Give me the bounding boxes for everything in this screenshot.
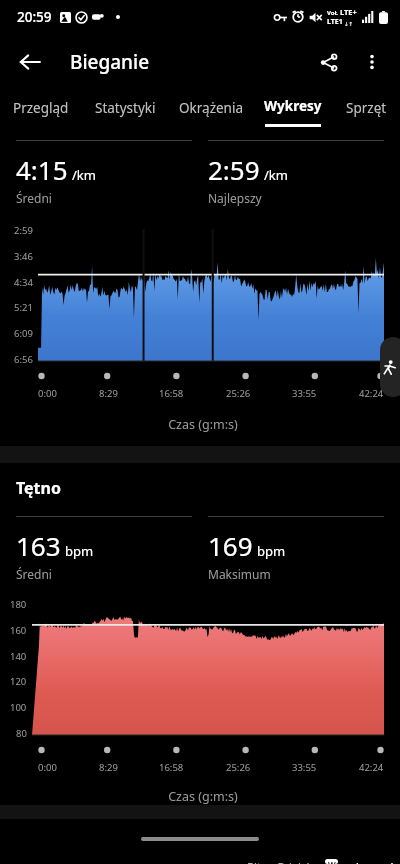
button[interactable]: Więcej opcji (350, 40, 394, 84)
staticText: bpm (257, 542, 286, 560)
staticText: 163 (16, 528, 61, 563)
staticText: 5:21 (14, 301, 33, 314)
staticText: Tętno (16, 477, 61, 499)
staticText: Przegląd (13, 99, 69, 117)
staticText: LTE1 (327, 17, 343, 27)
staticText: VoŁ (327, 9, 338, 17)
staticText: Wykresy (264, 97, 322, 115)
staticText: Czas (g:m:s) (6, 788, 400, 805)
staticText: wykop.pl (339, 859, 394, 864)
staticText: 16:58 (159, 761, 184, 774)
staticText: Średni (16, 190, 52, 206)
staticText: 2:59 (14, 224, 33, 237)
staticText: 33:55 (292, 761, 317, 774)
staticText: 6:56 (14, 353, 33, 366)
staticText: 80 (16, 727, 27, 740)
staticText: /km (264, 166, 288, 184)
staticText: Najlepszy (208, 190, 262, 206)
staticText: 4:15 (16, 152, 68, 187)
staticText: 25:26 (226, 761, 251, 774)
staticText: 3:46 (14, 250, 33, 263)
staticText: 0:00 (38, 387, 57, 400)
staticText: 8:29 (99, 761, 118, 774)
staticText: 33:55 (292, 387, 317, 400)
staticText: Okrążenia (179, 99, 243, 117)
staticText: 4:34 (14, 276, 33, 289)
staticText: 20:59 (17, 8, 52, 26)
staticText: Czas (g:m:s) (6, 416, 400, 433)
staticText: LTE+ (340, 7, 357, 17)
staticText: 42:24 (359, 387, 384, 400)
staticText: Piter_Privisi z (247, 859, 321, 864)
staticText: 25:26 (226, 387, 251, 400)
staticText: Statystyki (95, 99, 156, 117)
staticText: 120 (10, 675, 27, 688)
button[interactable]: Sprzęt (332, 90, 400, 134)
staticText: 2:59 (208, 152, 260, 187)
staticText: 8:29 (99, 387, 118, 400)
staticText: Sprzęt (346, 99, 387, 117)
staticText: Średni (16, 566, 52, 582)
staticText: 0:00 (38, 761, 57, 774)
staticText: Bieganie (70, 49, 150, 75)
staticText: ↓↑ (344, 21, 354, 27)
button[interactable]: Wstecz (8, 40, 52, 84)
button[interactable]: Przegląd (0, 90, 82, 134)
staticText: bpm (65, 542, 94, 560)
staticText: 180 (10, 598, 27, 611)
staticText: 169 (208, 528, 253, 563)
staticText: 160 (10, 624, 27, 637)
button[interactable]: Wykresy (254, 90, 332, 134)
staticText: 42:24 (359, 761, 384, 774)
button[interactable]: Typ aktywności (380, 337, 400, 397)
button[interactable]: Statystyki (82, 90, 168, 134)
staticText: 140 (10, 650, 27, 663)
staticText: 16:58 (159, 387, 184, 400)
staticText: 6:09 (14, 327, 33, 340)
button[interactable]: Udostępnij (306, 40, 350, 84)
staticText: W (328, 859, 336, 864)
button[interactable]: Okrążenia (168, 90, 254, 134)
staticText: /km (72, 166, 96, 184)
staticText: 100 (10, 701, 27, 714)
staticText: Maksimum (208, 566, 271, 582)
